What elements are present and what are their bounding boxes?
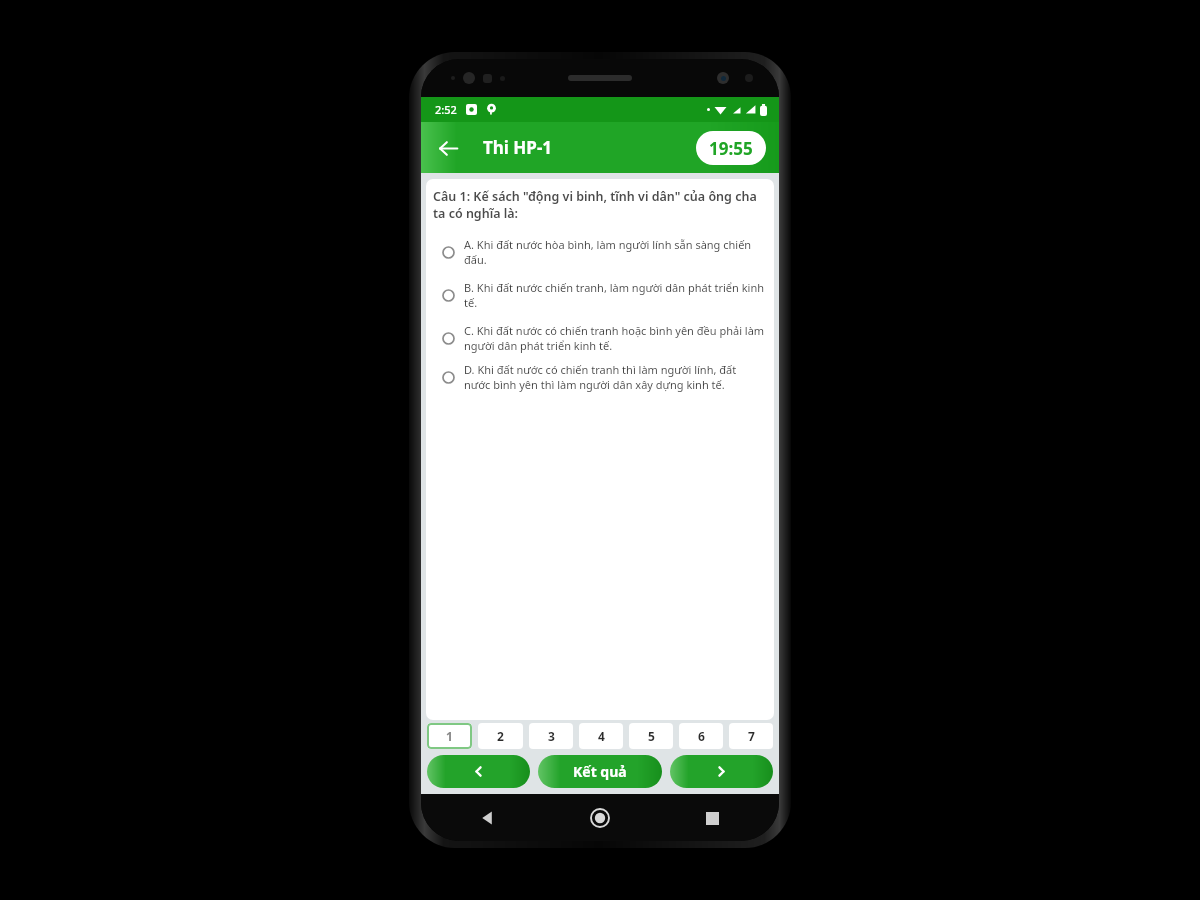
- staticText: 7: [748, 728, 755, 744]
- button[interactable]: 5: [629, 723, 673, 749]
- button[interactable]: 6: [679, 723, 723, 749]
- staticText: 4: [598, 728, 605, 744]
- button[interactable]: Previous question: [427, 755, 530, 788]
- staticText: Câu 1: Kế sách "động vi binh, tĩnh vi dâ…: [433, 188, 767, 222]
- button[interactable]: A. Khi đất nước hòa bình, làm người lính…: [433, 237, 767, 267]
- staticText: 6: [698, 728, 705, 744]
- staticText: 1: [446, 728, 453, 744]
- button[interactable]: Recent apps: [693, 799, 731, 837]
- staticText: 3: [548, 728, 555, 744]
- button[interactable]: Back: [427, 127, 469, 169]
- button[interactable]: Next question: [670, 755, 773, 788]
- staticText: 19:55: [709, 137, 753, 160]
- button[interactable]: 19:55: [696, 131, 766, 165]
- staticText: Thi HP-1: [483, 136, 553, 159]
- button[interactable]: 4: [579, 723, 623, 749]
- button[interactable]: Kết quả: [538, 755, 662, 788]
- staticText: Kết quả: [573, 762, 627, 781]
- button[interactable]: Back: [469, 799, 507, 837]
- staticText: 5: [648, 728, 655, 744]
- button[interactable]: B. Khi đất nước chiến tranh, làm người d…: [433, 280, 767, 310]
- staticText: 2: [497, 728, 504, 744]
- button[interactable]: 1: [427, 723, 472, 749]
- button[interactable]: D. Khi đất nước có chiến tranh thì làm n…: [433, 362, 767, 392]
- staticText: B. Khi đất nước chiến tranh, làm người d…: [464, 280, 765, 310]
- button[interactable]: 2: [478, 723, 523, 749]
- staticText: D. Khi đất nước có chiến tranh thì làm n…: [464, 362, 765, 392]
- button[interactable]: 7: [729, 723, 773, 749]
- staticText: A. Khi đất nước hòa bình, làm người lính…: [464, 237, 765, 267]
- staticText: 2:52: [435, 102, 457, 117]
- button[interactable]: 3: [529, 723, 573, 749]
- button[interactable]: Home: [581, 799, 619, 837]
- staticText: C. Khi đất nước có chiến tranh hoặc bình…: [464, 323, 765, 353]
- button[interactable]: C. Khi đất nước có chiến tranh hoặc bình…: [433, 323, 767, 353]
